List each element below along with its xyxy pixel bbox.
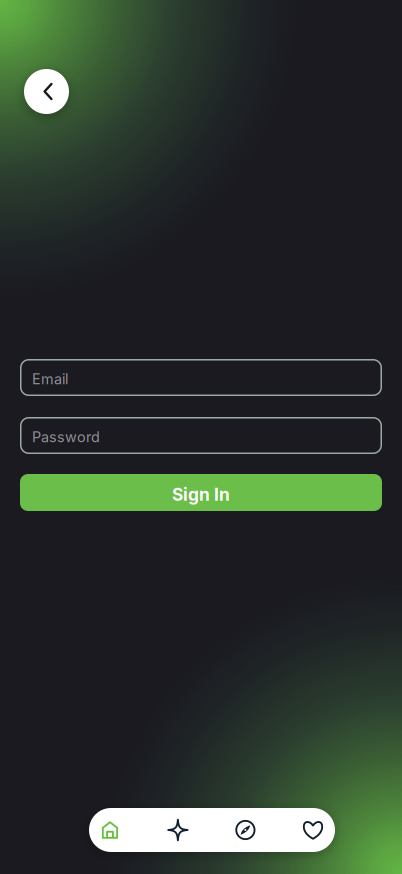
button[interactable]: For You <box>156 808 200 852</box>
staticText: Email <box>32 370 68 388</box>
button[interactable]: Home <box>88 808 132 852</box>
button[interactable]: Back <box>24 69 69 114</box>
button[interactable]: Favourites <box>291 808 335 852</box>
button[interactable]: Sign In <box>20 474 382 511</box>
button[interactable]: Explore <box>223 808 267 852</box>
button[interactable]: Email <box>20 359 382 396</box>
staticText: Sign In <box>172 484 230 505</box>
button[interactable]: Password <box>20 417 382 454</box>
staticText: Password <box>32 428 100 446</box>
